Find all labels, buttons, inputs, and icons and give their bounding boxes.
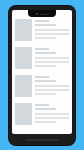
button[interactable] xyxy=(15,75,69,97)
button[interactable]: Front camera notch xyxy=(9,6,75,145)
button[interactable] xyxy=(15,19,69,41)
button[interactable] xyxy=(15,47,69,69)
button[interactable] xyxy=(15,103,69,125)
other: Front camera notch xyxy=(28,10,56,17)
